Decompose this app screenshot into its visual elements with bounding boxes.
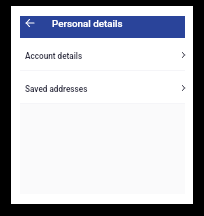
staticText: Saved addresses <box>25 84 88 94</box>
button[interactable]: Account details <box>20 38 185 70</box>
staticText: Account details <box>25 51 83 61</box>
button[interactable]: Saved addresses <box>20 71 185 103</box>
button[interactable]: Navigate up <box>21 16 39 30</box>
staticText: Personal details <box>52 18 123 29</box>
